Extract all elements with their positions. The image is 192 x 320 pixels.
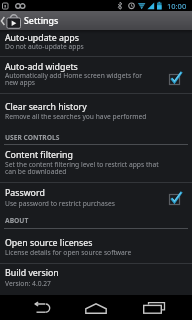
staticText: Password (5, 187, 45, 199)
button[interactable]: Clear search history (0, 94, 192, 128)
staticText: Auto-update apps (5, 32, 79, 44)
staticText: Auto-add widgets (5, 61, 78, 73)
button[interactable]: Password (0, 183, 192, 216)
staticText: Do not auto-update apps (5, 42, 84, 51)
staticText: Set the content filtering level to restr… (5, 160, 159, 169)
staticText: Content filtering (5, 149, 73, 161)
staticText: Settings (24, 15, 59, 27)
staticText: USER CONTROLS (5, 133, 60, 142)
staticText: new apps (5, 78, 35, 87)
staticText: Build version (5, 267, 59, 279)
staticText: can be downloaded (5, 167, 67, 176)
staticText: Open source licenses (5, 237, 93, 249)
button[interactable] (0, 295, 64, 320)
button[interactable]: Settings (0, 11, 192, 30)
staticText: 10:00 (167, 1, 187, 11)
staticText: Clear search history (5, 101, 87, 113)
button[interactable]: Auto-update apps (0, 30, 192, 57)
staticText: License details for open source software (5, 248, 132, 257)
staticText: Use password to restrict purchases (5, 199, 115, 208)
button[interactable]: Open source licenses (0, 230, 192, 263)
button[interactable]: Build version (0, 264, 192, 295)
staticText: ABOUT (5, 216, 29, 225)
staticText: Automatically add Home screen widgets fo… (5, 71, 142, 80)
button[interactable]: Content filtering (0, 146, 192, 182)
staticText: Version: 4.0.27 (5, 279, 51, 288)
button[interactable] (64, 295, 128, 320)
staticText: Remove all the searches you have perform… (5, 112, 147, 121)
button[interactable]: Auto-add widgets (0, 57, 192, 93)
button[interactable] (128, 295, 192, 320)
